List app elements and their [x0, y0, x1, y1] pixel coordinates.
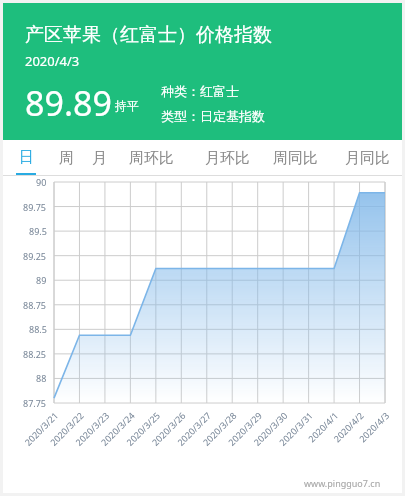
- button[interactable]: 周同比: [267, 140, 324, 176]
- staticText: 种类：红富士: [161, 83, 239, 99]
- staticText: 月环比: [205, 149, 250, 168]
- button[interactable]: 周: [56, 140, 76, 176]
- staticText: 月: [92, 149, 107, 168]
- staticText: 周: [59, 149, 74, 168]
- staticText: 2020/4/3: [25, 52, 80, 70]
- button[interactable]: 周环比: [123, 140, 180, 176]
- button[interactable]: 月同比: [339, 140, 396, 176]
- staticText: 持平: [115, 98, 139, 113]
- staticText: 类型：日定基指数: [161, 108, 265, 124]
- staticText: 89.89: [25, 80, 112, 126]
- staticText: 日: [19, 148, 34, 167]
- staticText: 周同比: [273, 149, 318, 168]
- staticText: 产区苹果（红富士）价格指数: [25, 23, 272, 47]
- button[interactable]: 日: [16, 140, 36, 176]
- button[interactable]: 月环比: [199, 140, 256, 176]
- staticText: 周环比: [129, 149, 174, 168]
- button[interactable]: 月: [89, 140, 109, 176]
- staticText: 月同比: [345, 149, 390, 168]
